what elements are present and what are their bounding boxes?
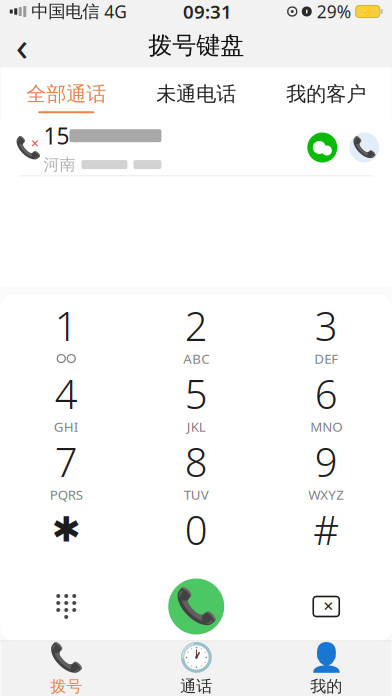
staticText: 中国电信 [31, 1, 99, 22]
button[interactable]: 6 [261, 365, 391, 433]
staticText: 📞 [352, 136, 377, 159]
button[interactable]: 全部通话 [1, 75, 131, 119]
staticText: 15 [43, 121, 69, 151]
staticText: 09:31 [183, 0, 232, 24]
staticText: ‹ [16, 19, 28, 72]
button[interactable]: 删除 [261, 569, 391, 643]
button[interactable]: # [261, 501, 391, 569]
button[interactable]: 🕐 [131, 641, 261, 696]
button[interactable]: 3 [261, 297, 391, 365]
staticText: 拨号键盘 [148, 31, 244, 60]
button[interactable]: 0 [131, 501, 261, 569]
staticText: 拨号 [50, 677, 82, 696]
staticText: 1 [55, 299, 78, 352]
staticText: TUV [184, 486, 209, 503]
staticText: ✱ [52, 510, 81, 549]
staticText: # [313, 503, 339, 556]
button[interactable]: 👤 [261, 641, 391, 696]
staticText: 🕐 [179, 642, 214, 674]
staticText: 0 [185, 503, 208, 556]
staticText: DEF [314, 350, 338, 367]
staticText: WXYZ [308, 486, 344, 503]
button[interactable]: 1 [1, 297, 131, 365]
staticText: ✕ [30, 137, 39, 149]
staticText: 📞 [49, 642, 84, 674]
staticText: ✕ [323, 599, 334, 614]
button[interactable]: 2 [131, 297, 261, 365]
button[interactable]: 拨打电话 [349, 132, 379, 162]
staticText: 通话 [180, 677, 212, 696]
button[interactable]: 📞 [1, 641, 131, 696]
staticText: 2 [185, 299, 208, 352]
button[interactable]: 拨号 [131, 569, 261, 643]
button[interactable]: 返回 [0, 23, 44, 67]
button[interactable]: 微信 [307, 132, 337, 162]
staticText: PQRS [50, 486, 83, 503]
staticText: 9 [315, 435, 338, 488]
button[interactable]: 我的客户 [261, 75, 391, 119]
staticText: 全部通话 [26, 82, 106, 106]
button[interactable]: 8 [131, 433, 261, 501]
staticText: MNO [310, 418, 342, 435]
button[interactable]: 未通电话 [131, 75, 261, 119]
staticText: ABC [183, 350, 209, 367]
staticText: 29% [317, 0, 351, 23]
staticText: 我的 [310, 677, 342, 696]
button[interactable]: 4 [1, 365, 131, 433]
staticText: 3 [315, 299, 338, 352]
staticText: 4G [104, 0, 127, 23]
staticText: 8 [185, 435, 208, 488]
staticText: 📞 [15, 135, 42, 160]
staticText: 👤 [309, 642, 344, 674]
staticText: 📞 [175, 587, 218, 626]
staticText: 4 [55, 367, 78, 420]
button[interactable]: 📞 [0, 119, 392, 175]
staticText: ⚡ [360, 5, 375, 18]
button[interactable]: 隐藏键盘 [1, 569, 131, 643]
staticText: JKL [187, 418, 206, 435]
staticText: 6 [315, 367, 338, 420]
staticText: 河南 [43, 155, 75, 174]
button[interactable]: 7 [1, 433, 131, 501]
button[interactable]: ✱ [1, 501, 131, 569]
staticText: 我的客户 [286, 82, 366, 106]
button[interactable]: 5 [131, 365, 261, 433]
button[interactable]: 9 [261, 433, 391, 501]
staticText: 7 [55, 435, 78, 488]
staticText: 未通电话 [156, 82, 236, 106]
staticText: GHI [54, 418, 79, 435]
staticText: 5 [185, 367, 208, 420]
